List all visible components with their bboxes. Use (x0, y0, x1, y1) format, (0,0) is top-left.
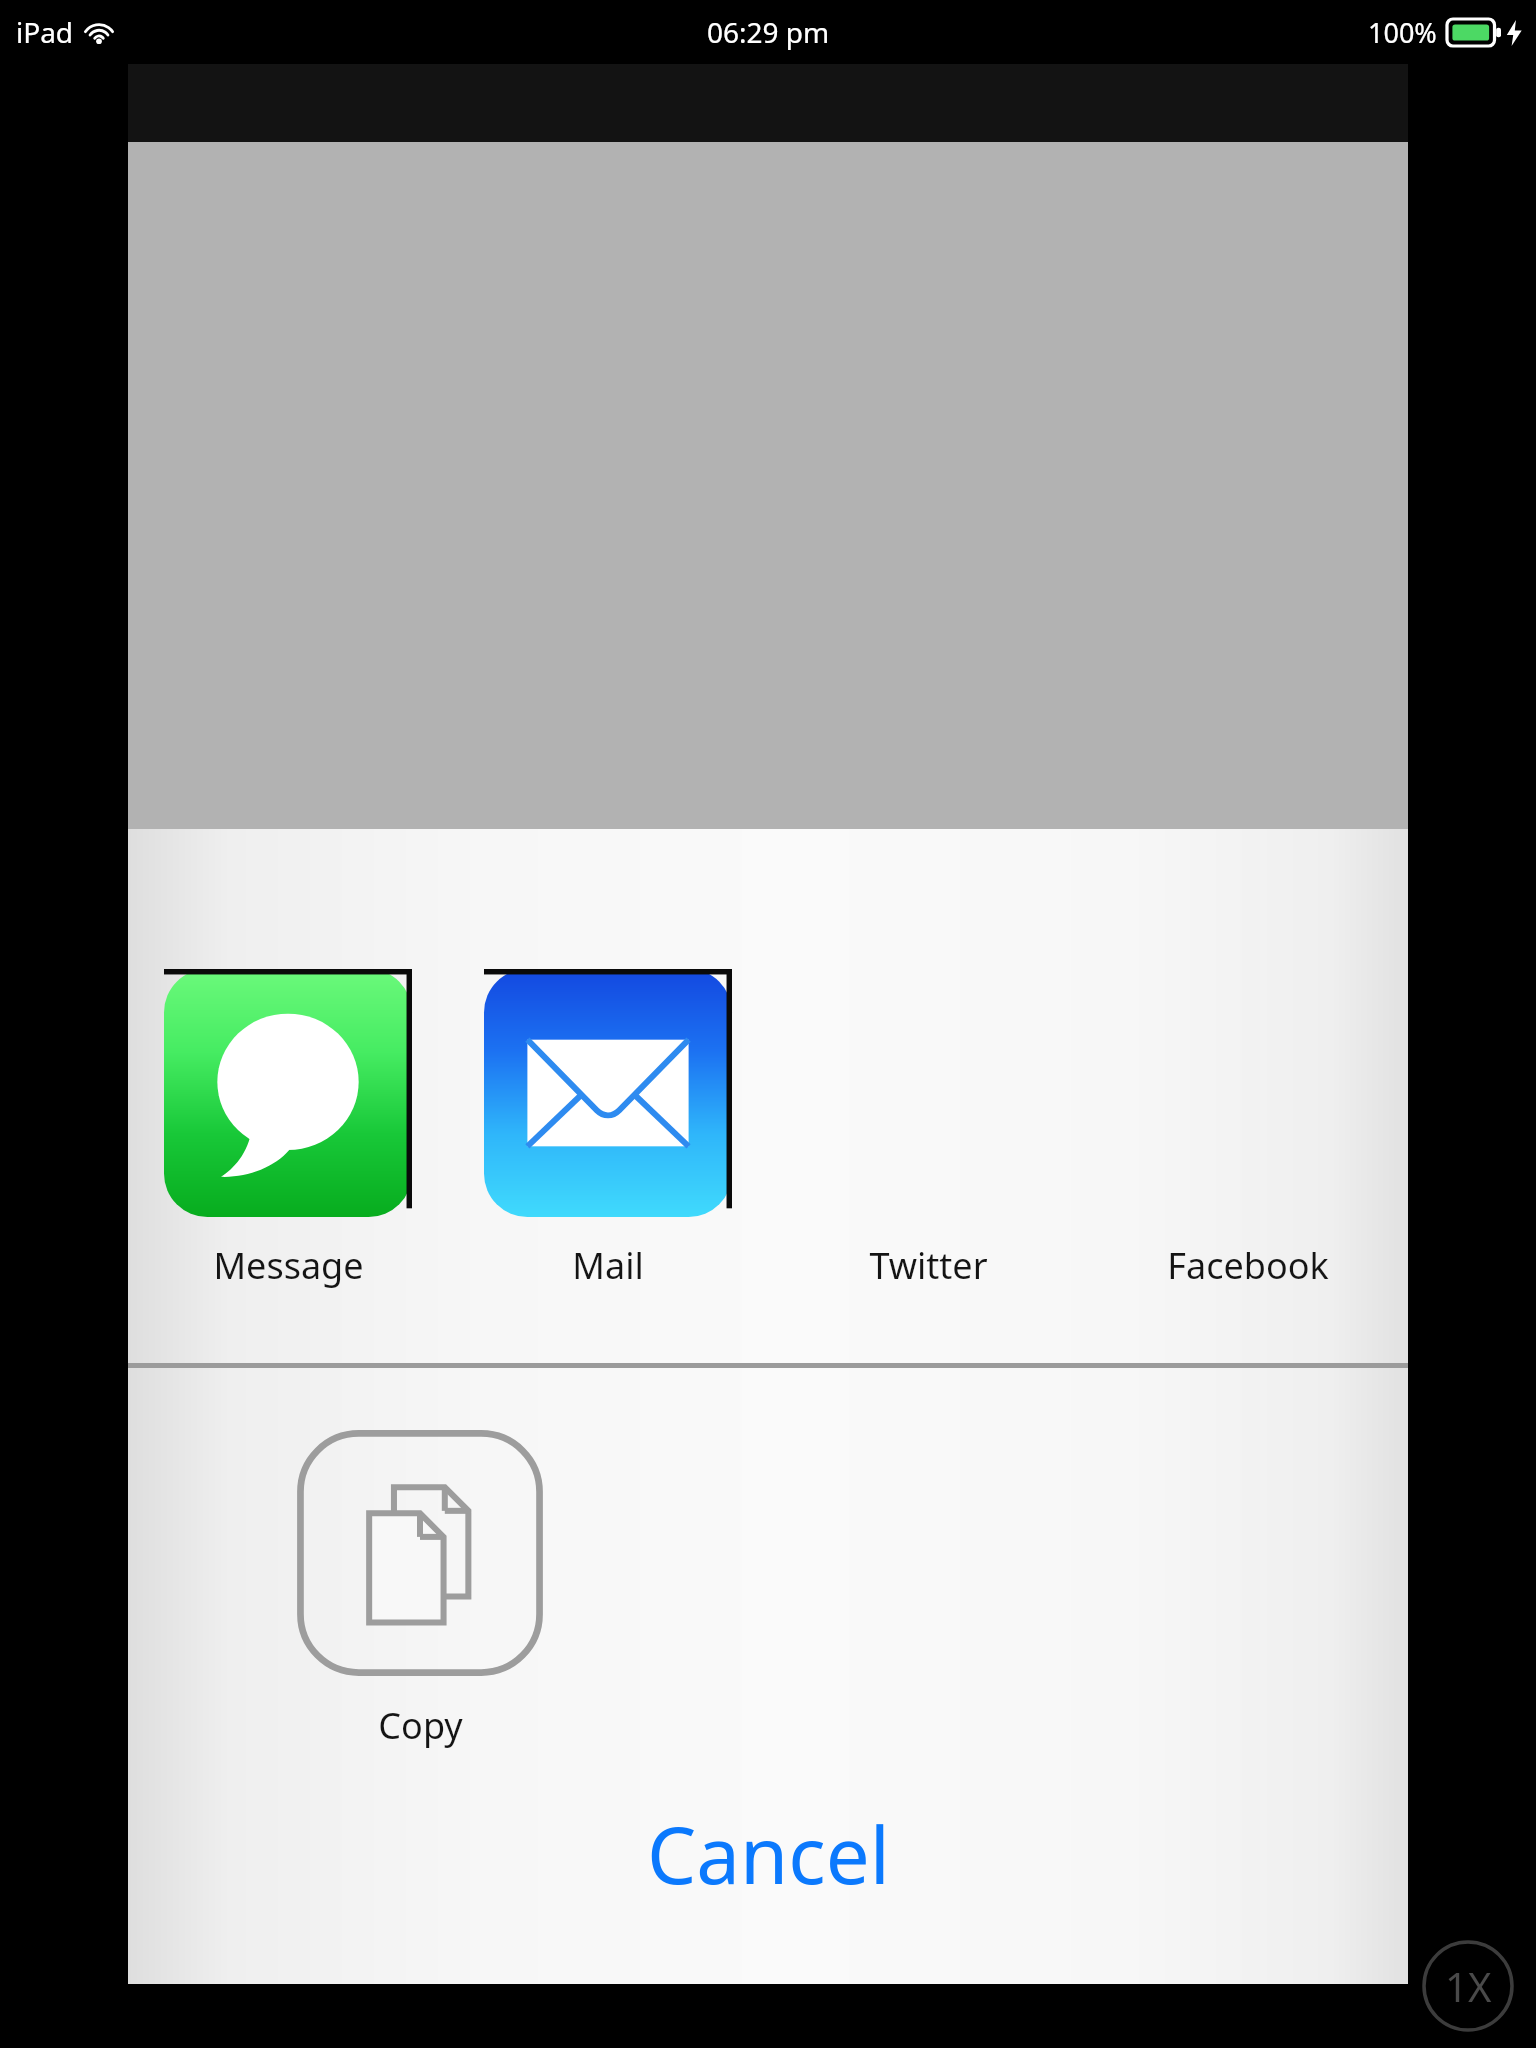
button[interactable]: Cancel (128, 1779, 1408, 1929)
staticText: Cancel (647, 1801, 890, 1907)
button[interactable]: Copy (296, 1429, 544, 1750)
button[interactable]: Facebook (1088, 829, 1408, 1363)
staticText: Message (213, 1241, 364, 1290)
staticText: 1X (1445, 1959, 1492, 2013)
button[interactable]: Twitter (768, 829, 1088, 1363)
staticText: 100% (1368, 14, 1437, 51)
button[interactable]: Mail (448, 829, 768, 1363)
staticText: Mail (572, 1241, 644, 1290)
button[interactable]: Zoom 1X (1422, 1940, 1514, 2032)
staticText: iPad (16, 13, 74, 51)
staticText: Facebook (1167, 1241, 1329, 1290)
staticText: Twitter (869, 1241, 988, 1290)
staticText: 06:29 pm (707, 13, 830, 51)
other: Copy (296, 1429, 544, 1677)
staticText: Copy (378, 1701, 463, 1750)
button[interactable]: Message (128, 829, 448, 1363)
